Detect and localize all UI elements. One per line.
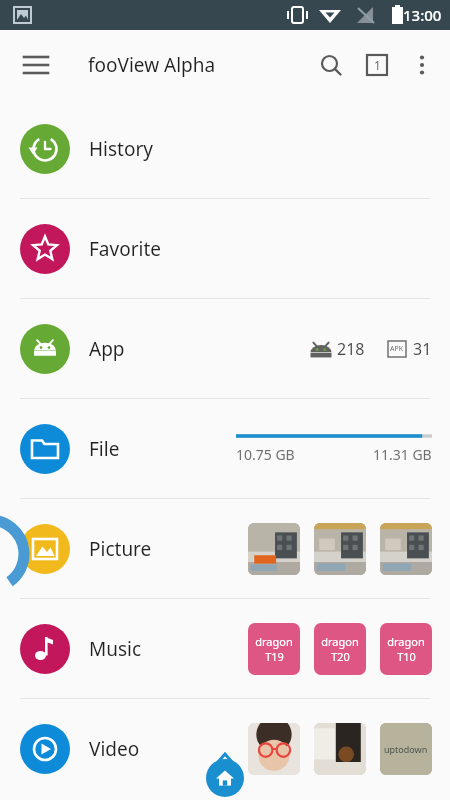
staticText: Music [89, 636, 142, 662]
button[interactable]: App [0, 299, 450, 399]
staticText: 13:00 [403, 5, 442, 25]
staticText: 10.75 GB [236, 445, 295, 464]
button[interactable]: Music [0, 599, 450, 699]
button[interactable]: Favorite [0, 199, 450, 299]
button[interactable]: Home [206, 759, 244, 797]
staticText: APK [390, 344, 404, 354]
button[interactable]: Video [0, 699, 450, 799]
staticText: fooView Alpha [88, 52, 216, 78]
staticText: dragon [387, 634, 425, 649]
button[interactable]: More options [400, 43, 444, 87]
staticText: uptodown [384, 743, 428, 755]
staticText: 11.31 GB [373, 445, 432, 464]
button[interactable]: Picture [0, 499, 450, 599]
staticText: App [89, 336, 125, 362]
button[interactable]: History [0, 99, 450, 199]
staticText: 1 [374, 57, 381, 73]
button[interactable]: Menu [12, 41, 60, 89]
staticText: T10 [397, 649, 416, 664]
staticText: Video [89, 736, 140, 762]
button[interactable]: Search [308, 42, 354, 88]
staticText: dragon [321, 634, 359, 649]
staticText: Favorite [89, 236, 161, 262]
staticText: dragon [255, 634, 293, 649]
staticText: T20 [331, 649, 350, 664]
button[interactable]: File [0, 399, 450, 499]
staticText: History [89, 136, 153, 162]
staticText: 31 [413, 338, 432, 360]
staticText: 218 [337, 338, 365, 360]
staticText: Picture [89, 536, 152, 562]
button[interactable]: Tabs [354, 42, 400, 88]
staticText: T19 [265, 649, 284, 664]
staticText: File [89, 436, 120, 462]
